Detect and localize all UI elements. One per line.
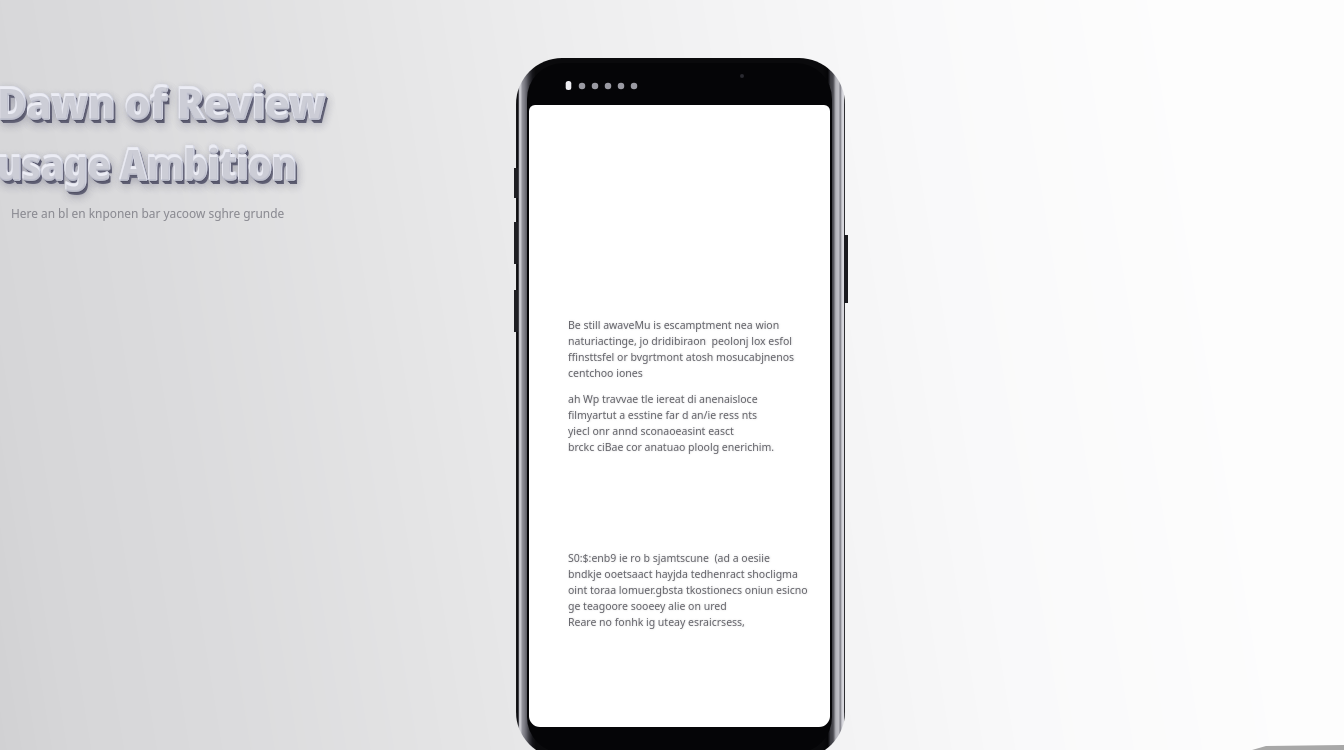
staticText: usage Ambition	[0, 137, 300, 197]
button[interactable]: usage Ambition	[0, 133, 348, 193]
button[interactable]: ah Wp travvae tle iereat di anenaisloce …	[568, 392, 775, 454]
button[interactable]: Be still awaveMu is escamptment nea wion…	[568, 318, 795, 380]
staticText: Dawn of Review	[0, 74, 325, 134]
staticText: Dawn of Review	[0, 74, 326, 134]
staticText: ah Wp travvae tle iereat di anenaisloce …	[568, 392, 775, 454]
button[interactable]: S0:$:enb9 ie ro b sjamtscune (ad a oesii…	[568, 551, 808, 629]
staticText: Dawn of Review	[0, 73, 325, 133]
staticText: Dawn of Review	[0, 75, 327, 135]
staticText: usage Ambition	[0, 133, 296, 193]
staticText: usage Ambition	[0, 132, 297, 192]
other: Front camera	[740, 74, 744, 78]
staticText: usage Ambition	[0, 135, 298, 195]
staticText: usage Ambition	[0, 133, 297, 193]
staticText: usage Ambition	[0, 133, 298, 193]
staticText: Dawn of Review	[0, 72, 324, 132]
button[interactable]: Dawn of Review	[0, 72, 352, 132]
staticText: usage Ambition	[0, 134, 297, 194]
staticText: usage Ambition	[0, 135, 297, 195]
staticText: Dawn of Review	[0, 72, 325, 132]
staticText: Dawn of Review	[0, 76, 328, 136]
staticText: S0:$:enb9 ie ro b sjamtscune (ad a oesii…	[568, 551, 808, 629]
button[interactable]: Here an bl en knponen bar yacoow sghre g…	[11, 205, 285, 221]
staticText: Dawn of Review	[0, 71, 324, 131]
staticText: Be still awaveMu is escamptment nea wion…	[568, 318, 795, 380]
staticText: Dawn of Review	[0, 71, 325, 131]
staticText: Dawn of Review	[0, 72, 326, 132]
staticText: usage Ambition	[0, 132, 296, 192]
staticText: Here an bl en knponen bar yacoow sghre g…	[11, 205, 285, 221]
staticText: usage Ambition	[0, 136, 299, 196]
other: Status bar icons	[565, 80, 643, 91]
